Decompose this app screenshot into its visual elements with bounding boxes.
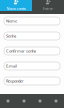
staticText: Responder xyxy=(6,78,24,84)
staticText: E-mail xyxy=(6,63,17,69)
button[interactable]: Entrar xyxy=(32,0,64,11)
staticText: Entrar xyxy=(42,6,53,11)
button[interactable] xyxy=(16,94,32,108)
button[interactable]: Nova conta xyxy=(0,0,32,11)
button[interactable] xyxy=(32,94,48,108)
button[interactable] xyxy=(0,94,16,108)
staticText: Confirmar senha xyxy=(6,48,36,54)
staticText: Senha xyxy=(6,33,16,39)
staticText: Nome xyxy=(6,18,17,24)
staticText: Nova conta xyxy=(6,6,25,11)
button[interactable] xyxy=(48,94,64,108)
